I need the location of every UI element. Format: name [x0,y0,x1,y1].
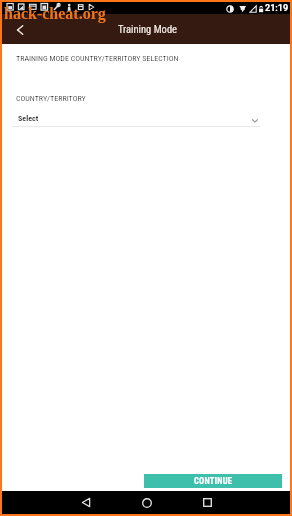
staticText: 21:19 [265,3,289,14]
staticText: hack-cheat.org [4,5,106,23]
staticText: TRAINING MODE COUNTRY/TERRITORY SELECTIO… [16,54,179,63]
staticText: Training Mode [118,23,178,35]
button[interactable]: Home [134,491,159,514]
button[interactable]: Select [12,110,262,130]
button[interactable]: CONTINUE [144,474,282,488]
button[interactable]: Back [2,14,36,44]
button[interactable]: Recents [195,491,220,514]
staticText: COUNTRY/TERRITORY [16,94,86,103]
staticText: Select [18,114,39,123]
staticText: CONTINUE [194,476,233,486]
button[interactable]: Back [72,491,97,514]
